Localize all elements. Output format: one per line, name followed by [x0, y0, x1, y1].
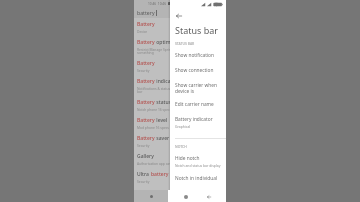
button[interactable]: Battery	[134, 114, 226, 132]
staticText: saver	[155, 135, 170, 142]
staticText: Hide notch	[175, 155, 200, 162]
button[interactable]: Battery	[134, 132, 226, 150]
staticText: Security	[137, 143, 150, 147]
staticText: Battery indicator	[175, 116, 213, 123]
button[interactable]: Battery	[134, 75, 226, 96]
staticText: Notifications & status bar	[137, 86, 171, 94]
button[interactable]: battery	[134, 7, 226, 18]
button[interactable]: Show notification icons	[170, 50, 226, 61]
button[interactable]: Notch in individual apps	[170, 173, 226, 184]
staticText: Notch in individual apps	[175, 175, 224, 182]
staticText: Battery	[137, 60, 155, 67]
button[interactable]: Edit carrier name	[170, 99, 226, 110]
staticText: Ultra	[137, 171, 151, 178]
staticText: Battery	[137, 21, 155, 28]
staticText: Battery	[137, 78, 155, 85]
staticText: battery	[151, 171, 169, 178]
button[interactable]: Battery	[134, 36, 226, 57]
staticText: Show notification icons	[175, 52, 224, 59]
staticText: status	[155, 99, 171, 106]
button[interactable]: Home	[180, 191, 191, 202]
staticText: Graphical	[175, 124, 191, 129]
staticText: Gallery	[137, 153, 154, 160]
button[interactable]: Hide notch	[170, 153, 226, 170]
staticText: Battery	[137, 135, 155, 142]
staticText: Mod phone 16 specs	[137, 125, 169, 129]
staticText: Show carrier when device is locked	[175, 82, 224, 94]
button[interactable]: Gallery	[134, 150, 226, 168]
button[interactable]: Show connection speed	[170, 65, 226, 76]
staticText: Security	[137, 68, 150, 72]
staticText: Restrict Manage Sprint something	[137, 47, 173, 55]
staticText: level	[155, 117, 168, 124]
staticText: Notch phone 16 specs	[137, 107, 172, 111]
button[interactable]: Show carrier when device is locked	[170, 80, 226, 96]
button[interactable]: Battery indicator	[170, 114, 226, 131]
staticText: STATUS BAR	[175, 41, 195, 46]
staticText: Edit carrier name	[175, 101, 214, 108]
button[interactable]: Battery	[134, 57, 226, 75]
staticText: battery	[137, 9, 155, 16]
button[interactable]: Battery	[134, 96, 226, 114]
staticText: Device	[137, 29, 148, 33]
staticText: Show connection speed	[175, 67, 224, 74]
button[interactable]: Battery	[134, 18, 226, 36]
staticText: Status bar	[175, 24, 219, 36]
staticText: Authorisation app case	[137, 161, 173, 165]
staticText: indicato	[155, 78, 176, 85]
staticText: optimisa	[155, 39, 178, 46]
staticText: 10:46 10:46	[148, 2, 166, 6]
staticText: Security	[137, 179, 150, 183]
staticText: Battery	[137, 39, 155, 46]
staticText: NOTCH	[175, 144, 187, 149]
button[interactable]: Ultra	[134, 168, 226, 186]
staticText: Battery	[137, 99, 155, 106]
staticText: sav	[169, 171, 179, 178]
staticText: Battery	[137, 117, 155, 124]
staticText: Notch and status bar display options	[175, 163, 224, 168]
button[interactable]: Back	[173, 10, 184, 21]
button[interactable]: Back	[203, 191, 214, 202]
button[interactable]: Recents	[146, 191, 156, 201]
